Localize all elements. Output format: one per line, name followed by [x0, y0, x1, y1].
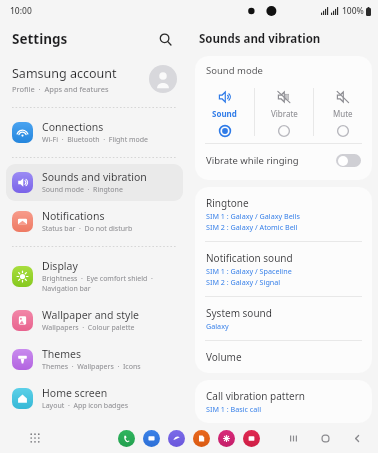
staticText: Notifications: [42, 209, 105, 223]
button[interactable]: Apps: [25, 428, 45, 448]
staticText: Sound: [212, 108, 237, 119]
button[interactable]: Call vibration pattern: [195, 380, 372, 423]
staticText: Sound mode · Ringtone: [42, 185, 123, 195]
staticText: SIM 2 : Galaxy / Signal: [206, 277, 281, 287]
staticText: Vibrate while ringing: [206, 154, 299, 167]
button[interactable]: Connections: [6, 114, 183, 151]
button[interactable]: Display: [6, 253, 183, 300]
button[interactable]: Home: [316, 429, 334, 447]
button[interactable]: Mute: [314, 85, 372, 139]
button[interactable]: Themes: [6, 341, 183, 378]
button[interactable]: Galaxy Store: [218, 430, 235, 447]
staticText: Themes · Wallpapers · Icons: [42, 362, 141, 372]
staticText: Status bar · Do not disturb: [42, 224, 133, 234]
staticText: Sounds and vibration: [42, 170, 147, 184]
staticText: Wallpaper and style: [42, 308, 140, 322]
button[interactable]: Notification sound: [195, 242, 372, 296]
button[interactable]: Vibrate while ringing: [195, 144, 372, 176]
staticText: SIM 1 : Galaxy / Spaceline: [206, 266, 292, 276]
staticText: Volume: [206, 350, 242, 364]
button[interactable]: Volume: [195, 341, 372, 373]
button[interactable]: Phone: [118, 430, 135, 447]
staticText: Samsung account: [12, 65, 117, 82]
staticText: SIM 1 : Galaxy / Galaxy Bells: [206, 211, 300, 221]
button[interactable]: Back: [348, 429, 366, 447]
staticText: Connections: [42, 120, 104, 134]
staticText: Brightness · Eye comfort shield · Naviga…: [42, 274, 153, 294]
staticText: Wallpapers · Colour palette: [42, 323, 135, 333]
button[interactable]: Home screen: [6, 380, 183, 417]
staticText: Home screen: [42, 386, 108, 400]
staticText: System sound: [206, 306, 272, 320]
staticText: Wi-Fi · Bluetooth · Flight mode: [42, 135, 149, 145]
staticText: Sounds and vibration: [199, 31, 321, 47]
button[interactable]: Ringtone: [195, 187, 372, 241]
staticText: 100%: [342, 5, 364, 17]
staticText: Sound mode: [206, 64, 263, 77]
button[interactable]: Sounds and vibration: [6, 164, 183, 201]
staticText: Notification sound: [206, 251, 293, 265]
button[interactable]: Internet: [168, 430, 185, 447]
button[interactable]: Samsung account: [0, 56, 189, 102]
staticText: 10:00: [10, 5, 32, 17]
button[interactable]: Search: [153, 27, 177, 51]
staticText: Settings: [12, 30, 68, 48]
staticText: Ringtone: [206, 196, 249, 210]
staticText: Vibrate: [271, 108, 298, 119]
button[interactable]: System sound: [195, 297, 372, 340]
button[interactable]: Sound: [195, 85, 254, 139]
button[interactable]: Gallery: [243, 430, 260, 447]
staticText: Themes: [42, 347, 82, 361]
staticText: Profile · Apps and features: [12, 84, 109, 94]
staticText: Galaxy: [206, 321, 229, 331]
staticText: SIM 1 : Basic call: [206, 404, 262, 414]
staticText: Layout · App icon badges: [42, 401, 129, 411]
button[interactable]: Vibrate: [255, 85, 313, 139]
staticText: Mute: [333, 108, 353, 119]
staticText: SIM 2 : Galaxy / Atomic Bell: [206, 222, 298, 232]
staticText: Call vibration pattern: [206, 389, 305, 403]
staticText: Display: [42, 259, 78, 273]
button[interactable]: Recents: [284, 429, 302, 447]
button[interactable]: Messages: [143, 430, 160, 447]
button[interactable]: Notifications: [6, 203, 183, 240]
button[interactable]: Wallpaper and style: [6, 302, 183, 339]
button[interactable]: My Files: [193, 430, 210, 447]
